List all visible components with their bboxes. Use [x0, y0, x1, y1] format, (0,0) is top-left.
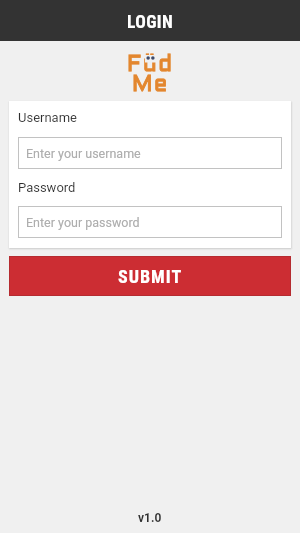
staticText: Enter your password	[26, 215, 140, 230]
staticText: Enter your username	[26, 146, 141, 161]
staticText: LOGIN	[127, 12, 174, 33]
staticText: Füd	[127, 55, 174, 75]
staticText: Password	[18, 180, 76, 195]
staticText: Username	[18, 110, 77, 125]
button[interactable]: Enter your username	[18, 137, 282, 169]
button[interactable]: Enter your password	[18, 206, 282, 238]
staticText: v1.0	[138, 511, 162, 525]
staticText: SUBMIT	[118, 266, 183, 287]
staticText: Füd	[127, 55, 174, 75]
button[interactable]: SUBMIT	[9, 256, 291, 296]
staticText: Me	[132, 75, 169, 95]
staticText: Me	[132, 75, 169, 95]
